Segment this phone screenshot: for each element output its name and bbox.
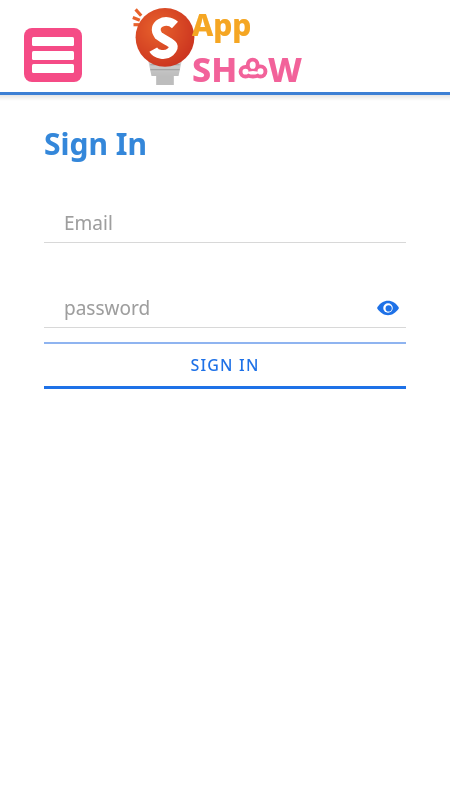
staticText: Apps Creator bbox=[221, 94, 281, 99]
button[interactable]: password bbox=[44, 289, 406, 328]
staticText: Sign In bbox=[44, 123, 147, 164]
staticText: password bbox=[64, 295, 151, 321]
staticText: Email bbox=[64, 210, 113, 236]
staticText: Smart bbox=[192, 94, 221, 99]
button[interactable]: Show password bbox=[370, 290, 406, 326]
button[interactable]: Menu bbox=[24, 28, 82, 82]
button[interactable]: Email bbox=[44, 204, 406, 243]
button[interactable]: SIGN IN bbox=[44, 342, 406, 389]
staticText: App bbox=[192, 4, 252, 45]
staticText: Service bbox=[281, 94, 313, 99]
staticText: SH bbox=[192, 46, 238, 92]
staticText: W bbox=[268, 46, 302, 92]
staticText: SIGN IN bbox=[190, 354, 260, 376]
